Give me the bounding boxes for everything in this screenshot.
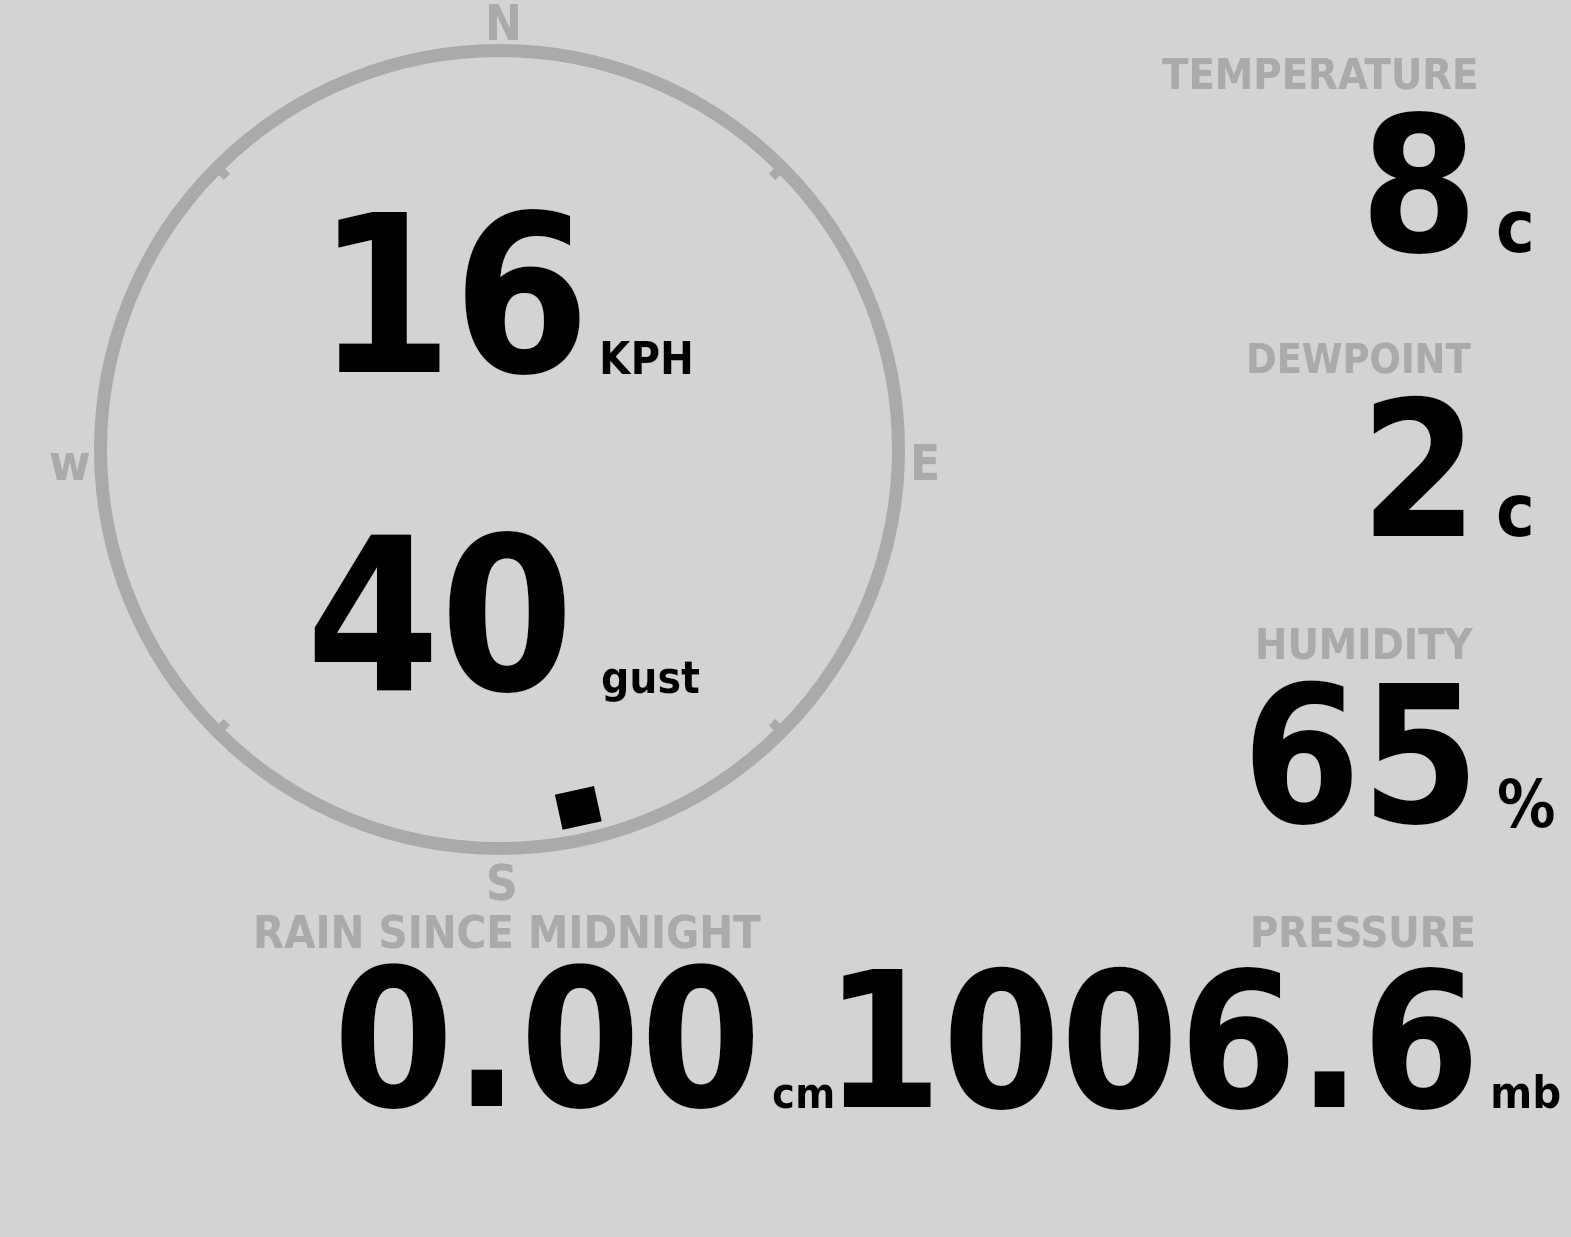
staticText: % [1497, 767, 1556, 843]
staticText: w [49, 434, 91, 492]
staticText: mb [1490, 1066, 1562, 1118]
button[interactable]: Wind speed 16 KPH [300, 160, 700, 385]
staticText: c [1496, 184, 1535, 269]
staticText: 1006.6 [824, 932, 1481, 1152]
button[interactable]: Wind direction dial [94, 44, 905, 855]
staticText: 65 [1242, 646, 1480, 867]
staticText: 16 [316, 169, 591, 424]
staticText: HUMIDITY [1255, 619, 1473, 669]
staticText: 0.00 [333, 927, 762, 1152]
staticText: 2 [1360, 361, 1479, 581]
staticText: gust [601, 652, 701, 703]
button[interactable] [1150, 45, 1565, 260]
button[interactable] [250, 902, 840, 1114]
button[interactable] [1150, 332, 1565, 542]
button[interactable] [845, 902, 1565, 1114]
staticText: KPH [599, 332, 694, 384]
staticText: S [486, 855, 518, 912]
staticText: RAIN SINCE MIDNIGHT [253, 906, 761, 958]
button[interactable] [1150, 615, 1565, 830]
staticText: PRESSURE [1250, 907, 1477, 957]
staticText: cm [772, 1068, 836, 1118]
button[interactable]: Wind gust 40 [295, 485, 705, 710]
staticText: N [485, 0, 522, 52]
staticText: 40 [306, 491, 574, 740]
staticText: c [1496, 468, 1535, 553]
staticText: E [910, 435, 941, 492]
staticText: TEMPERATURE [1162, 49, 1479, 99]
staticText: DEWPOINT [1246, 335, 1471, 383]
staticText: 8 [1360, 76, 1479, 296]
